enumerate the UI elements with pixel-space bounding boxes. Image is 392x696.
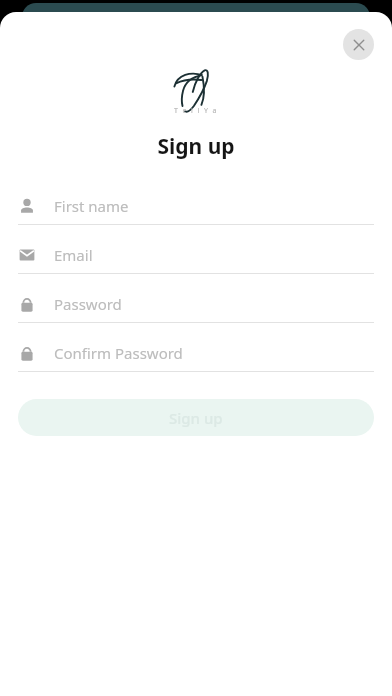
button[interactable]: Email bbox=[18, 236, 374, 273]
button[interactable]: Confirm Password bbox=[18, 334, 374, 371]
staticText: Password bbox=[54, 294, 122, 314]
button[interactable]: Close bbox=[343, 29, 374, 60]
button[interactable]: First name bbox=[18, 187, 374, 224]
staticText: Sign up bbox=[157, 132, 235, 161]
staticText: Sign up bbox=[169, 408, 223, 428]
staticText: T e l l Y a bbox=[174, 106, 218, 116]
staticText: Confirm Password bbox=[54, 343, 183, 363]
button[interactable]: Password bbox=[18, 285, 374, 322]
staticText: First name bbox=[54, 196, 129, 216]
button[interactable]: Sign up bbox=[18, 399, 374, 436]
staticText: Email bbox=[54, 245, 93, 265]
